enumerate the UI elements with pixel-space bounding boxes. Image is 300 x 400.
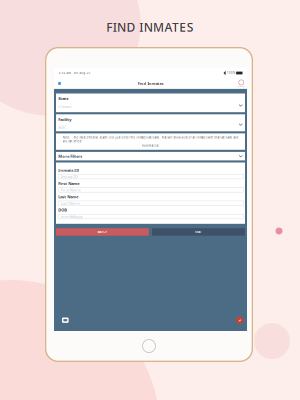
staticText: DOB <box>58 207 67 213</box>
staticText: FIND INMATES <box>106 19 194 35</box>
staticText: State <box>58 96 68 101</box>
staticText: Last Name <box>61 201 80 206</box>
staticText: Find Inmates <box>137 81 163 86</box>
staticText: from that list. <box>141 144 159 147</box>
button[interactable]: Messages <box>62 317 69 323</box>
staticText: Choose <box>58 104 71 109</box>
staticText: 4:34 AM Tue Aug 20 <box>58 71 90 75</box>
staticText: Last Name <box>58 194 78 199</box>
staticText: More Filters <box>58 153 82 159</box>
staticText: mm/dd/yyyy <box>61 214 83 219</box>
staticText: Inmate ID <box>58 167 79 173</box>
staticText: First Name <box>61 187 81 192</box>
button[interactable]: Facility <box>56 114 245 131</box>
button[interactable]: Back <box>56 79 63 87</box>
staticText: SEARCH <box>97 230 107 234</box>
staticText: RESET <box>195 230 202 234</box>
button[interactable]: Send message <box>236 317 243 323</box>
staticText: Facility <box>58 117 71 122</box>
staticText: ABC <box>58 125 67 130</box>
staticText: 100% <box>227 71 235 75</box>
staticText: First Name <box>58 181 79 186</box>
staticText: Note: The most effective search is to ju… <box>62 136 238 143</box>
button[interactable]: SEARCH <box>56 228 149 236</box>
button[interactable]: More Filters <box>56 152 245 160</box>
button[interactable]: State <box>56 93 245 112</box>
staticText: Inmate ID <box>61 174 78 179</box>
staticText: SMART JAIL <box>238 85 245 87</box>
button[interactable]: RESET <box>152 228 245 236</box>
